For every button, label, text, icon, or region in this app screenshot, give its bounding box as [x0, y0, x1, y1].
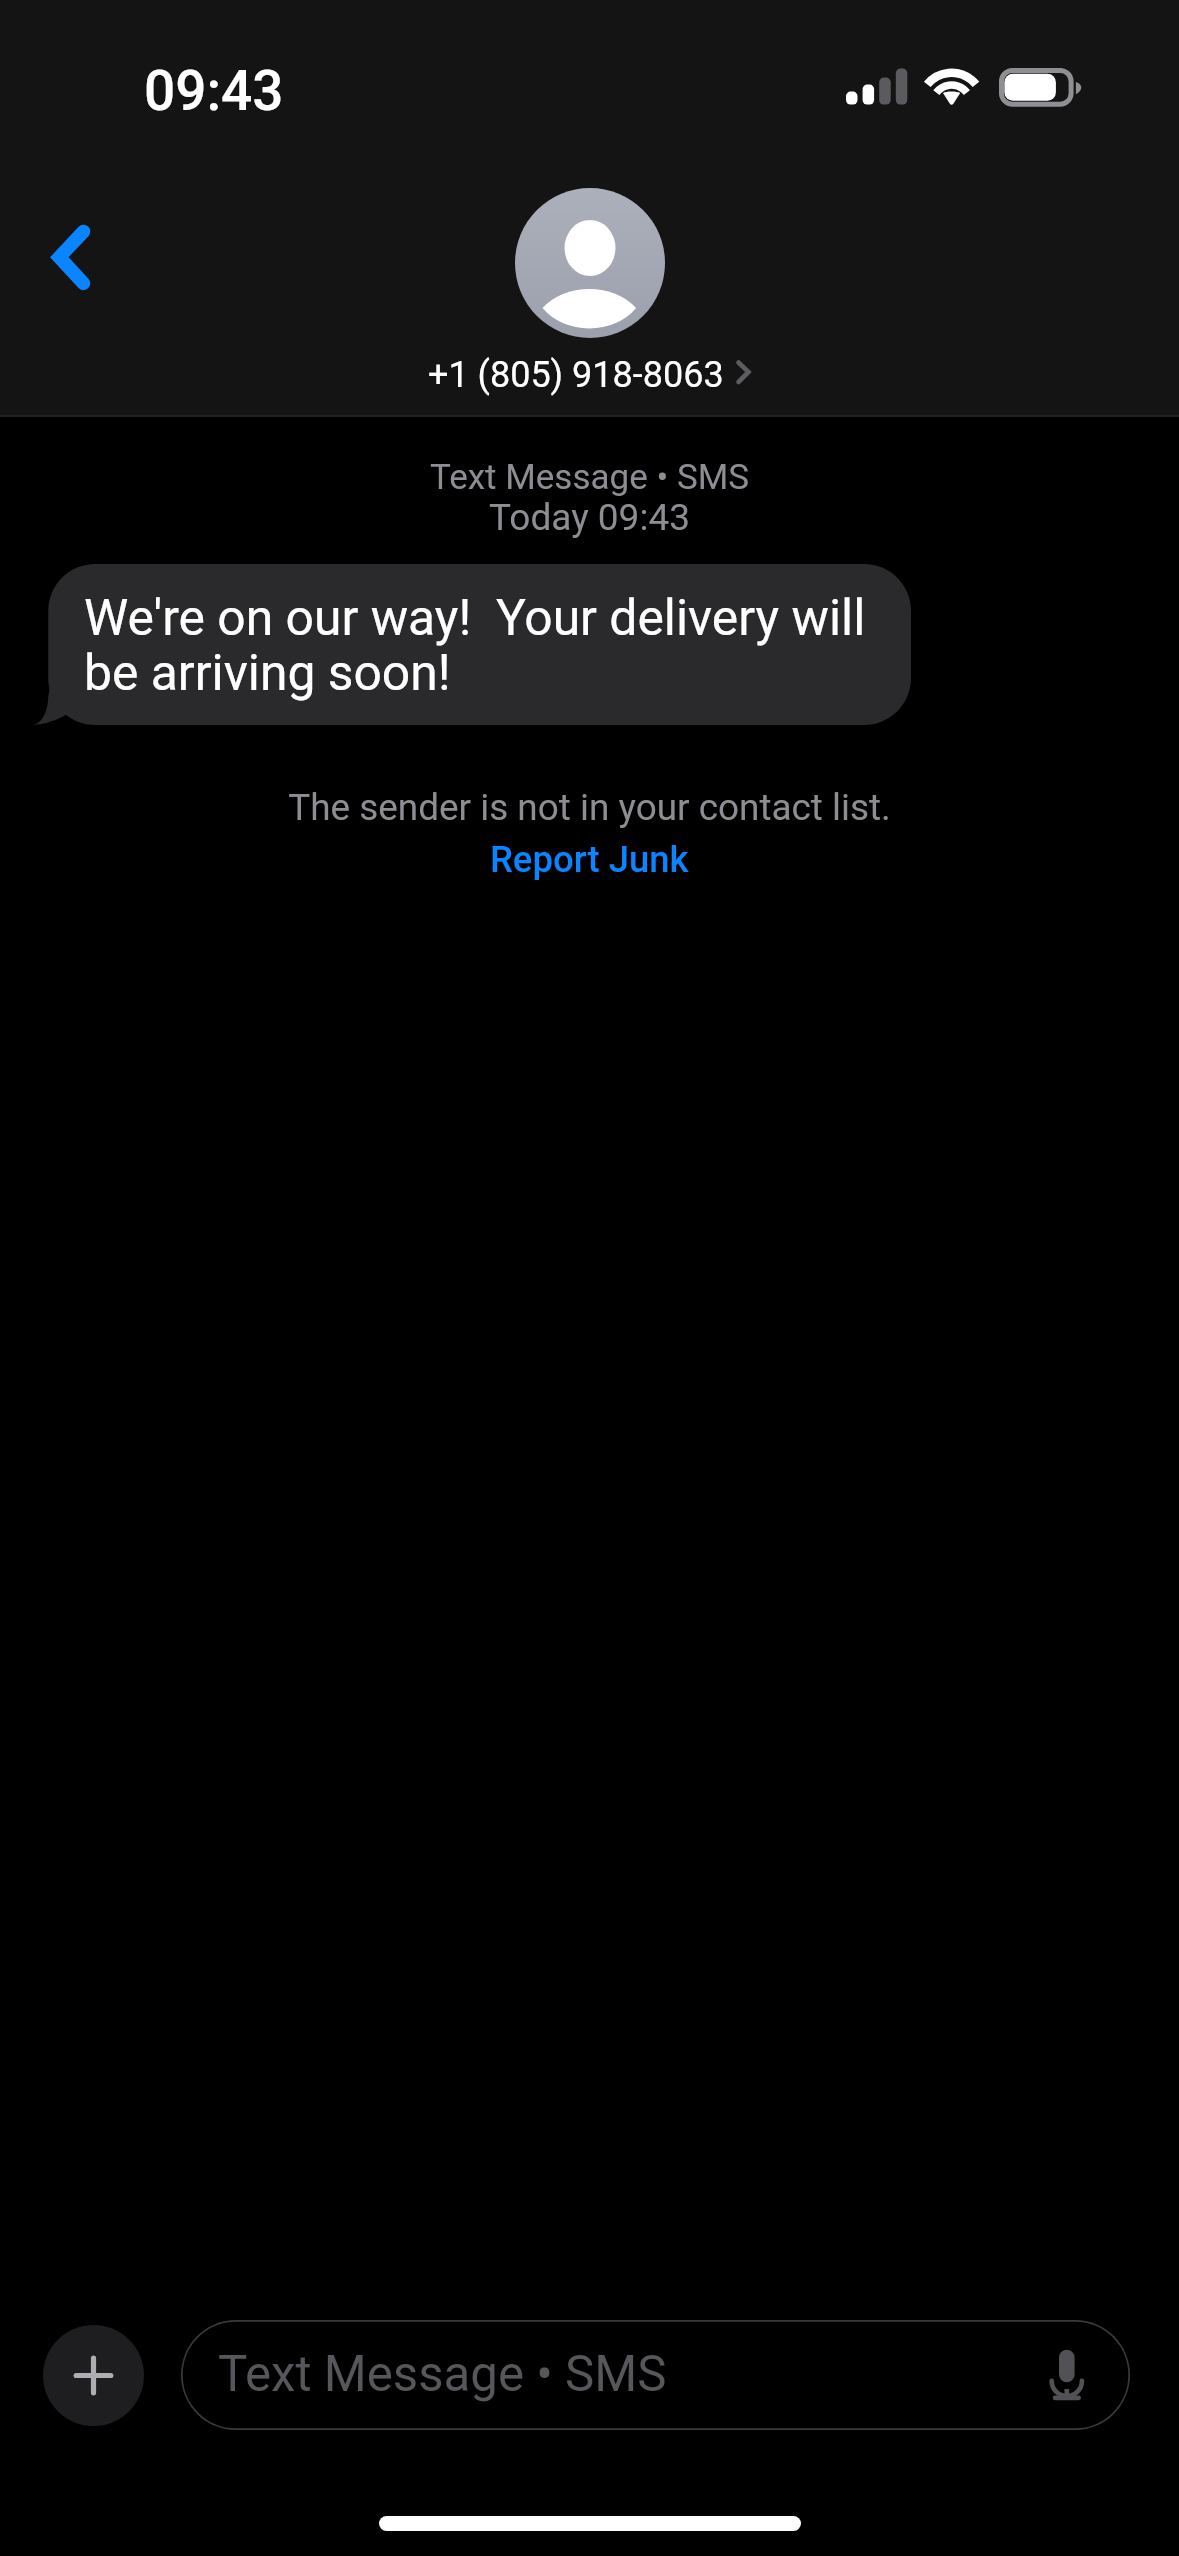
- staticText: +1 (805) 918-8063: [428, 354, 724, 396]
- button[interactable]: Report Junk: [476, 833, 703, 886]
- staticText: The sender is not in your contact list.: [0, 786, 1179, 829]
- button[interactable]: Back: [10, 195, 130, 319]
- staticText: Today 09:43: [0, 496, 1179, 539]
- staticText: Report Junk: [490, 838, 689, 881]
- staticText: Text Message • SMS: [218, 2345, 667, 2403]
- button[interactable]: Record audio message: [1035, 2340, 1099, 2408]
- button[interactable]: Text Message • SMS: [181, 2320, 1130, 2430]
- button[interactable]: Add attachment: [43, 2325, 144, 2426]
- button[interactable]: Contact details: [515, 188, 665, 338]
- staticText: 09:43: [144, 59, 284, 123]
- staticText: Text Message • SMS: [0, 457, 1179, 498]
- staticText: We're on our way! Your delivery will be …: [84, 589, 889, 702]
- button[interactable]: +1 (805) 918-8063: [410, 354, 770, 406]
- button[interactable]: We're on our way! Your delivery will be …: [31, 564, 911, 725]
